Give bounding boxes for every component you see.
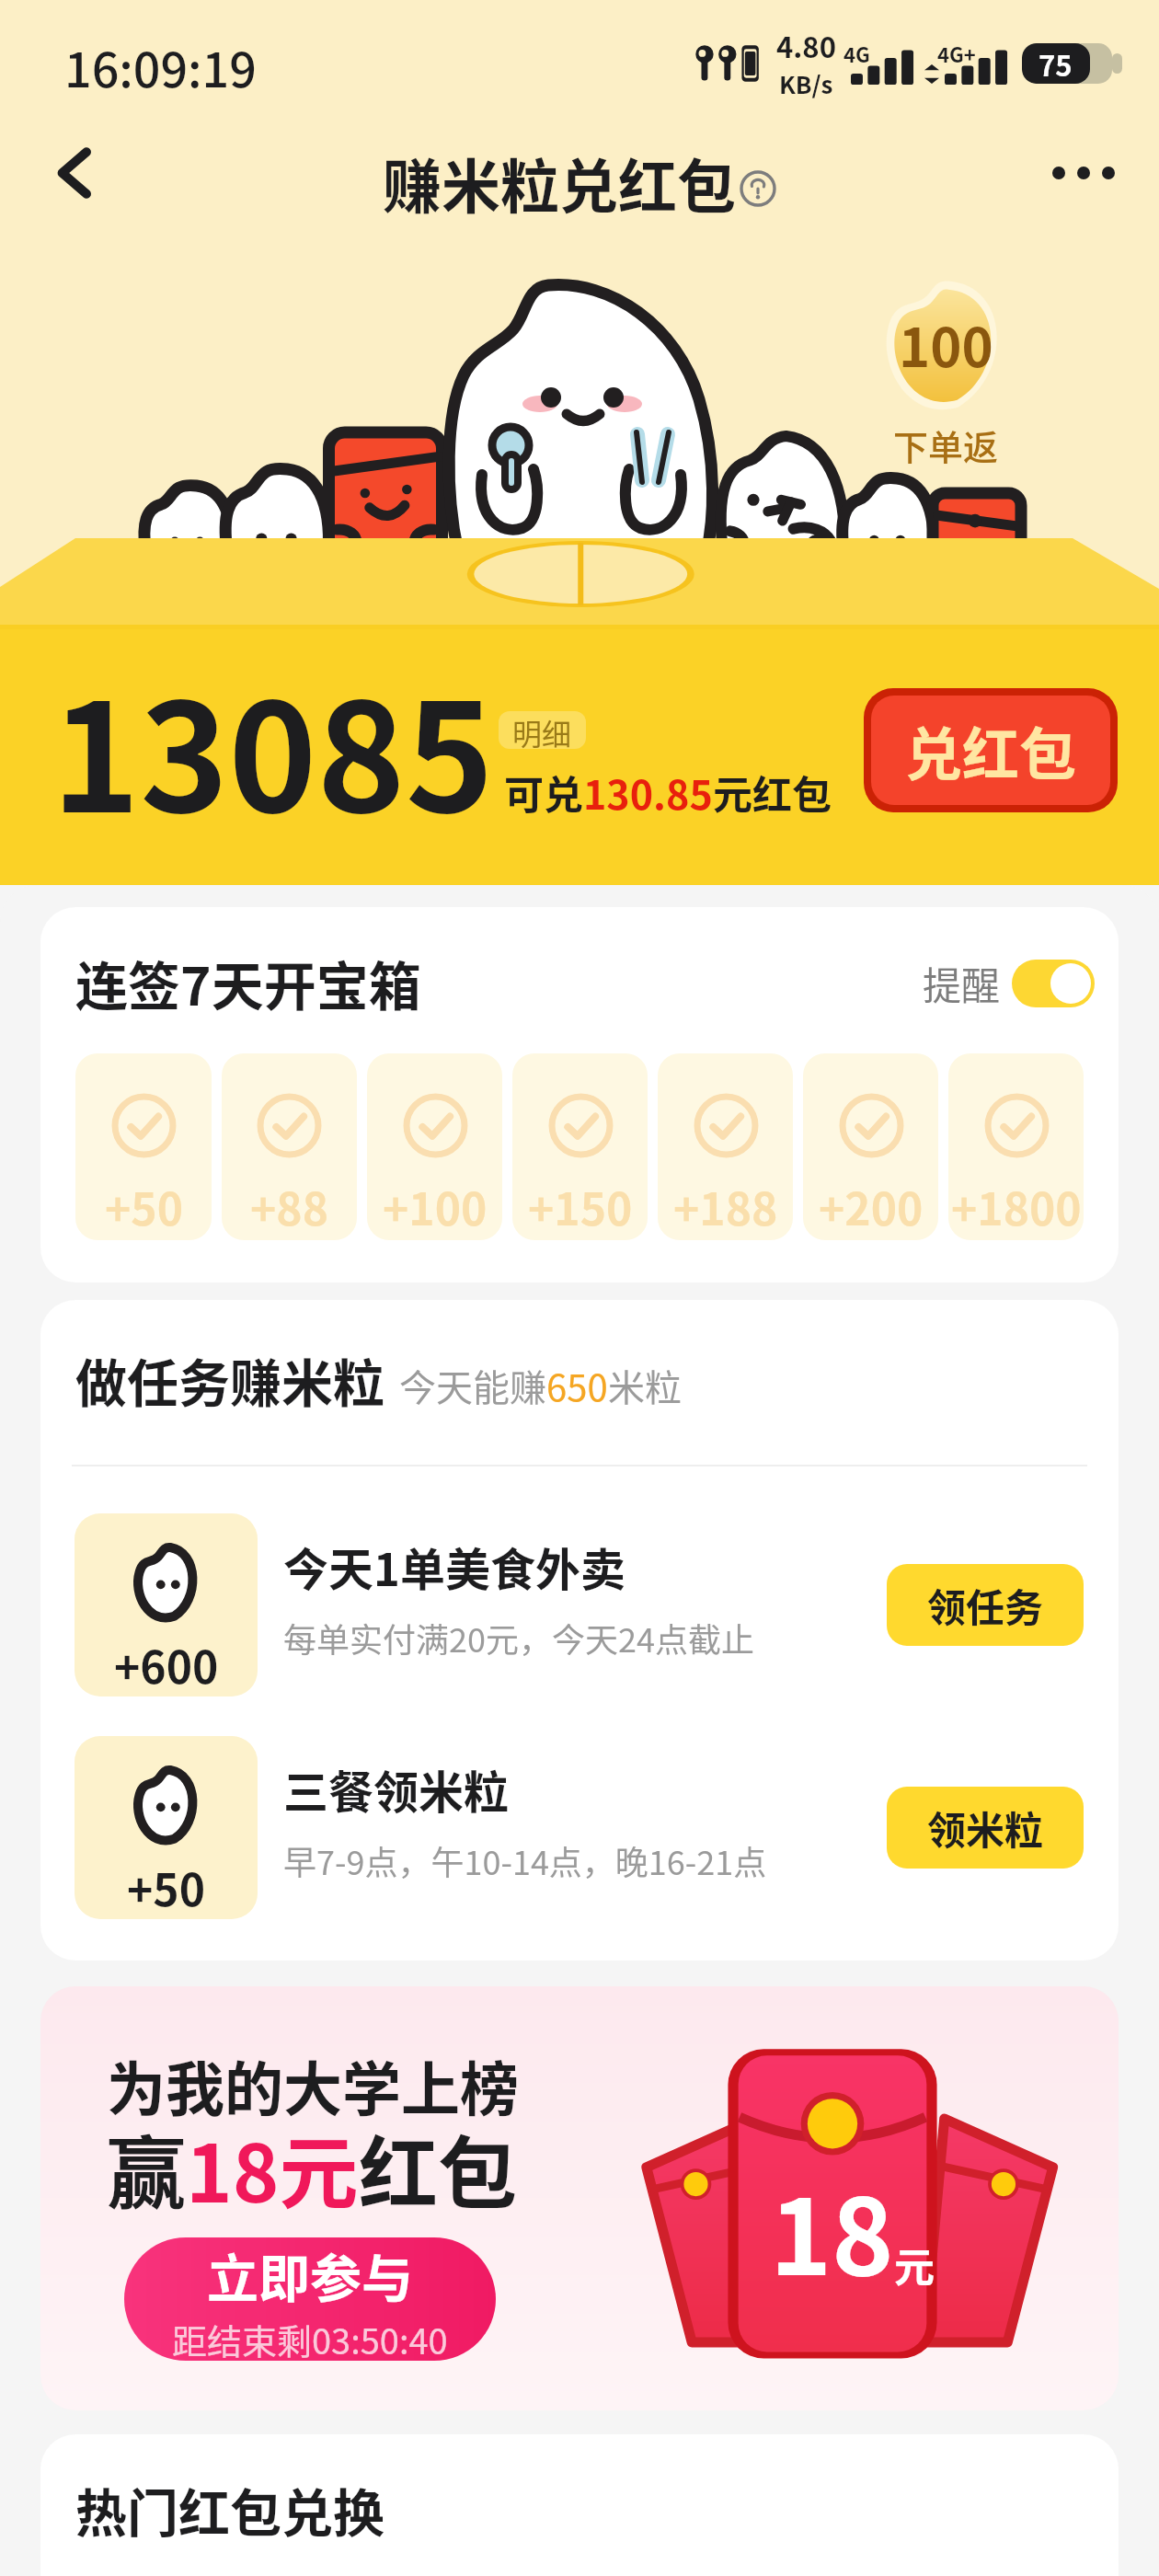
staticText: 兑红包 [905, 709, 1077, 792]
staticText: 早7-9点，午10-14点，晚16-21点 [283, 1836, 767, 1884]
staticText: 提醒 [923, 955, 1001, 1011]
staticText: 可兑 [504, 764, 583, 821]
staticText: 领米粒 [927, 1800, 1044, 1856]
staticText: 75 [1039, 43, 1073, 84]
staticText: 4G [843, 39, 870, 68]
staticText: 立即参与 [207, 2237, 413, 2312]
button[interactable]: +200 [803, 1053, 938, 1240]
staticText: 4.80 [776, 25, 836, 66]
staticText: 做任务赚米粒 [75, 1342, 384, 1417]
staticText: 今天1单美食外卖 [283, 1534, 625, 1599]
staticText: 热门红包兑换 [75, 2472, 384, 2547]
button[interactable]: Back [20, 118, 131, 228]
staticText: +100 [383, 1174, 488, 1238]
button[interactable]: +100 [367, 1053, 502, 1240]
staticText: 明细 [512, 711, 572, 749]
staticText: KB/s [779, 66, 833, 101]
staticText: 连签7天开宝箱 [75, 945, 421, 1021]
staticText: 米粒 [608, 1359, 682, 1412]
staticText: 每单实付满20元，今天24点截止 [283, 1614, 754, 1662]
staticText: +600 [114, 1632, 219, 1696]
staticText: 元 [894, 2236, 935, 2294]
staticText: +1800 [951, 1174, 1082, 1238]
button[interactable]: Help [740, 170, 776, 207]
button[interactable]: 提醒 [923, 955, 1095, 1011]
button[interactable]: 兑红包 [864, 688, 1118, 812]
staticText: 赢 [107, 2110, 186, 2225]
staticText: 下单返 [893, 420, 999, 470]
staticText: +88 [250, 1174, 328, 1238]
staticText: +50 [127, 1855, 205, 1919]
button[interactable]: +50 [75, 1053, 212, 1240]
staticText: 距结束剩03:50:40 [172, 2314, 448, 2361]
staticText: 4G+ [937, 39, 976, 68]
button[interactable]: 明细 [499, 711, 586, 749]
staticText: +150 [528, 1174, 633, 1238]
staticText: 130.85 [583, 764, 713, 821]
button[interactable]: 领米粒 [887, 1787, 1084, 1869]
staticText: 650 [546, 1359, 608, 1412]
staticText: 赚米粒兑红包 [383, 140, 736, 225]
staticText: 元红包 [713, 764, 832, 821]
staticText: 红包 [359, 2110, 517, 2225]
button[interactable]: +150 [512, 1053, 648, 1240]
staticText: 16:09:19 [64, 32, 257, 101]
staticText: 今天能赚 [399, 1359, 546, 1412]
button[interactable]: +188 [658, 1053, 793, 1240]
staticText: 18 [770, 2154, 894, 2306]
button[interactable]: +1800 [948, 1053, 1084, 1240]
staticText: 为我的大学上榜 [107, 2042, 519, 2128]
staticText: 领任务 [927, 1577, 1044, 1633]
staticText: 13085 [52, 638, 494, 856]
staticText: 18元 [186, 2110, 359, 2225]
staticText: 100 [899, 305, 993, 383]
button[interactable]: More options [1028, 118, 1139, 228]
button[interactable]: 热门红包兑换 [40, 2434, 1119, 2556]
staticText: +50 [105, 1174, 183, 1238]
staticText: +188 [673, 1174, 778, 1238]
staticText: 三餐领米粒 [283, 1756, 510, 1822]
button[interactable]: +88 [222, 1053, 357, 1240]
button[interactable]: 领任务 [887, 1564, 1084, 1646]
button[interactable]: 立即参与 [124, 2237, 496, 2361]
staticText: +200 [819, 1174, 924, 1238]
